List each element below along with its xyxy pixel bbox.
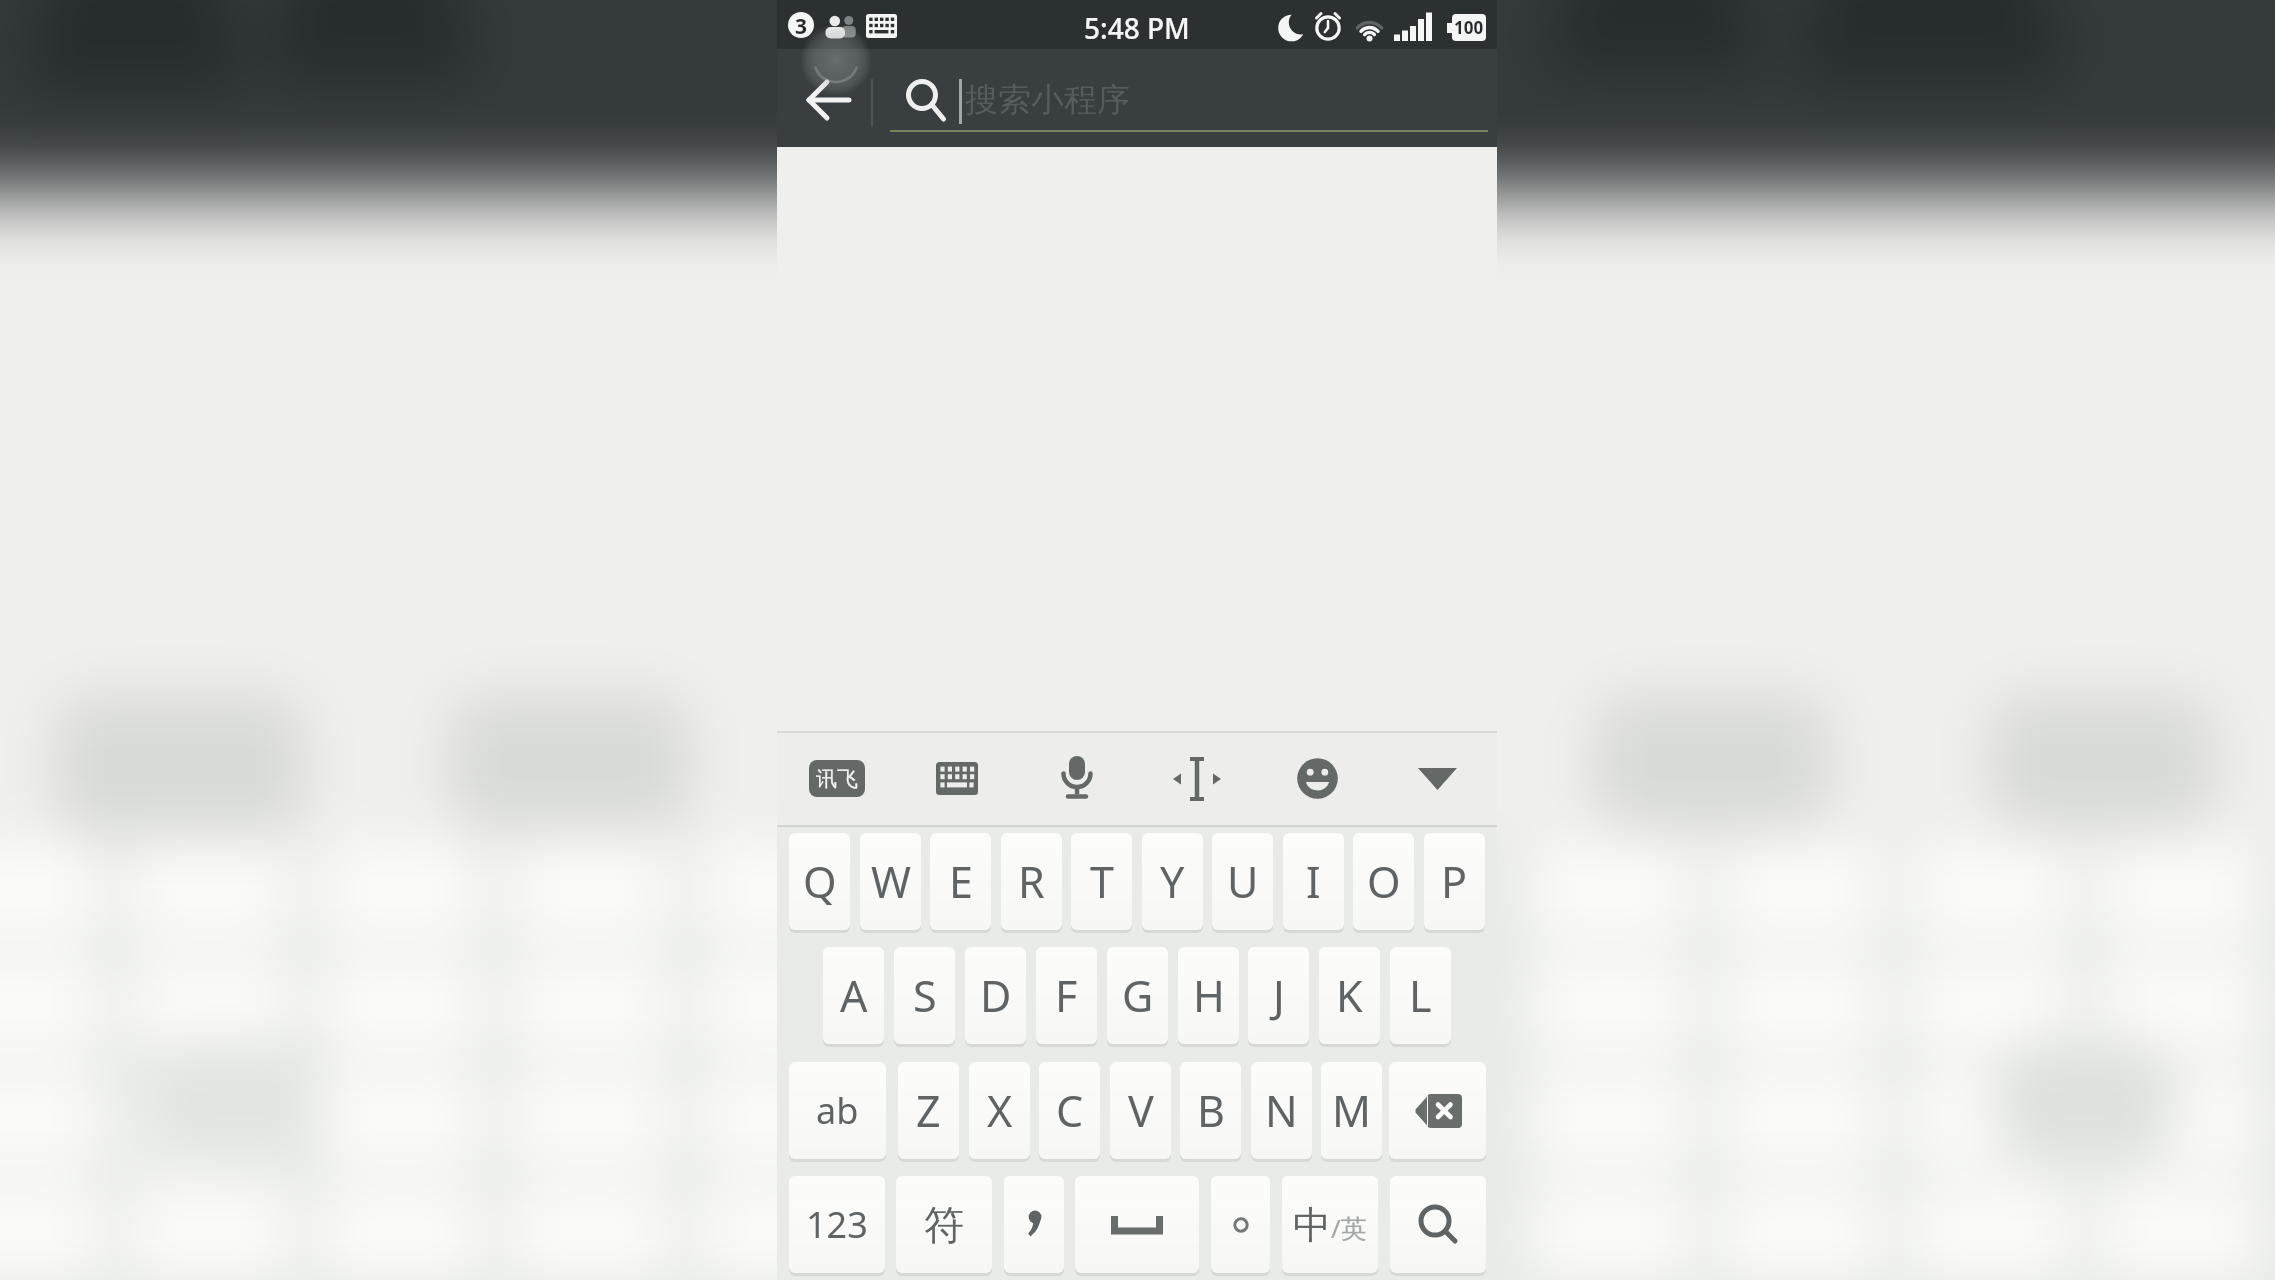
button[interactable]: C (1039, 1062, 1100, 1159)
button[interactable] (1269, 733, 1365, 824)
button[interactable]: B (1180, 1062, 1241, 1159)
button[interactable] (909, 733, 1005, 824)
staticText: O (1367, 852, 1401, 911)
staticText: G (1122, 966, 1154, 1025)
staticText: D (980, 966, 1012, 1025)
button[interactable]: L (1390, 947, 1451, 1044)
button[interactable]: 123 (789, 1176, 885, 1273)
button[interactable]: ab (789, 1062, 886, 1159)
staticText: R (1018, 852, 1045, 911)
button[interactable]: U (1212, 833, 1273, 930)
button[interactable]: G (1107, 947, 1168, 1044)
button[interactable]: N (1251, 1062, 1312, 1159)
button[interactable] (1149, 733, 1245, 824)
button[interactable] (1004, 1176, 1064, 1273)
button[interactable]: 中 (1282, 1176, 1378, 1273)
staticText: 讯飞 (816, 766, 858, 792)
staticText: W (871, 852, 911, 911)
staticText: 5:48 PM (1084, 9, 1190, 43)
staticText: 搜索小程序 (965, 79, 1130, 121)
button[interactable]: F (1036, 947, 1097, 1044)
button[interactable]: 讯飞 (789, 733, 885, 824)
button[interactable]: I (1283, 833, 1344, 930)
staticText: ab (816, 1086, 859, 1135)
staticText: /英 (1331, 1210, 1367, 1246)
button[interactable]: D (965, 947, 1026, 1044)
staticText: 符 (924, 1200, 964, 1250)
button[interactable]: V (1110, 1062, 1171, 1159)
button[interactable]: O (1353, 833, 1414, 930)
staticText: H (1193, 966, 1225, 1025)
staticText: B (1197, 1081, 1225, 1140)
button[interactable] (1029, 733, 1125, 824)
button[interactable]: M (1321, 1062, 1382, 1159)
button[interactable] (1390, 1176, 1486, 1273)
button[interactable]: H (1178, 947, 1239, 1044)
button[interactable] (794, 65, 864, 135)
button[interactable] (1389, 1062, 1486, 1159)
button[interactable]: 符 (896, 1176, 992, 1273)
staticText: F (1055, 966, 1078, 1025)
button[interactable]: Z (898, 1062, 959, 1159)
staticText: 100 (1454, 16, 1484, 39)
staticText: L (1409, 966, 1432, 1025)
button[interactable]: A (823, 947, 884, 1044)
staticText: J (1273, 966, 1285, 1025)
button[interactable]: P (1424, 833, 1485, 930)
button[interactable]: K (1319, 947, 1380, 1044)
button[interactable]: J (1248, 947, 1309, 1044)
staticText: Q (803, 852, 837, 911)
button[interactable]: S (894, 947, 955, 1044)
button[interactable]: Q (789, 833, 850, 930)
button[interactable]: Y (1142, 833, 1203, 930)
staticText: S (913, 966, 937, 1025)
button[interactable]: X (969, 1062, 1030, 1159)
staticText: A (840, 966, 868, 1025)
button[interactable]: R (1001, 833, 1062, 930)
button[interactable]: 搜索小程序 (877, 60, 1489, 140)
button[interactable] (1211, 1176, 1270, 1273)
staticText: E (949, 852, 973, 911)
button[interactable]: T (1071, 833, 1132, 930)
staticText: T (1090, 852, 1114, 911)
staticText: 3 (795, 12, 808, 38)
button[interactable]: E (930, 833, 991, 930)
staticText: K (1336, 966, 1363, 1025)
staticText: X (987, 1081, 1013, 1140)
staticText: 123 (806, 1200, 868, 1249)
staticText: C (1056, 1081, 1084, 1140)
button[interactable] (1389, 733, 1485, 824)
staticText: Z (916, 1081, 941, 1140)
staticText: V (1128, 1081, 1154, 1140)
staticText: U (1227, 852, 1259, 911)
staticText: N (1265, 1081, 1298, 1140)
staticText: Y (1160, 852, 1185, 911)
button[interactable] (1075, 1176, 1199, 1273)
button[interactable]: W (860, 833, 921, 930)
staticText: M (1332, 1081, 1372, 1140)
staticText: I (1306, 852, 1321, 911)
staticText: P (1441, 852, 1468, 911)
staticText: 中 (1293, 1201, 1331, 1249)
